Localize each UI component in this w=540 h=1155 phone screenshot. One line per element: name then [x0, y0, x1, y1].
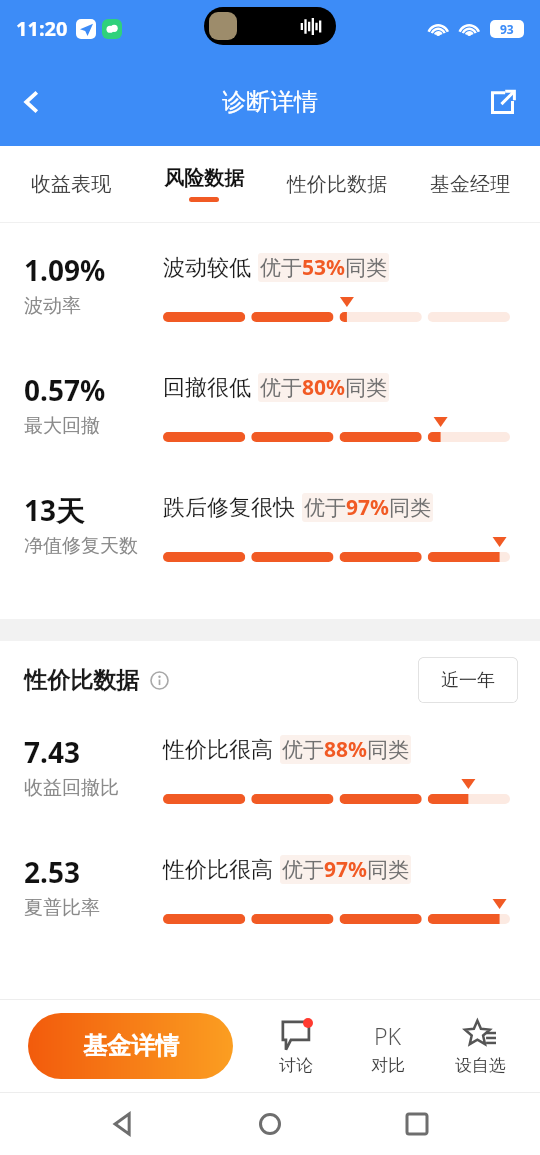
staticText: PK	[374, 1020, 402, 1051]
staticText: 0.57%	[24, 371, 106, 409]
button[interactable]: 2.53	[0, 839, 540, 959]
button[interactable]: 基金详情	[28, 1013, 233, 1079]
button[interactable]: 0.57%	[0, 357, 540, 477]
staticText: 回撤很低	[163, 374, 251, 402]
button[interactable]: PK	[350, 1013, 426, 1080]
staticText: 性价比很高	[163, 736, 273, 764]
staticText: 7.43	[24, 733, 80, 771]
staticText: 夏普比率	[24, 896, 100, 920]
staticText: 跌后修复很快	[163, 494, 295, 522]
button[interactable]: Recents	[393, 1100, 441, 1148]
staticText: 11:20	[16, 15, 68, 42]
button[interactable]: Back	[6, 76, 58, 128]
staticText: 优于97%同类	[304, 493, 431, 522]
staticText: 波动率	[24, 294, 81, 318]
staticText: 收益回撤比	[24, 776, 119, 800]
staticText: 优于53%同类	[260, 253, 387, 282]
staticText: 近一年	[441, 669, 495, 692]
button[interactable]: 13天	[0, 477, 540, 597]
button[interactable]: 设自选	[442, 1013, 518, 1080]
staticText: 讨论	[279, 1055, 313, 1076]
staticText: 诊断详情	[222, 87, 318, 117]
button[interactable]: 基金经理	[403, 146, 536, 222]
staticText: 收益表现	[31, 172, 111, 197]
staticText: 优于97%同类	[282, 855, 409, 884]
button[interactable]: 讨论	[258, 1013, 334, 1080]
staticText: 波动较低	[163, 254, 251, 282]
staticText: 性价比数据	[24, 666, 139, 695]
staticText: 13天	[24, 491, 85, 529]
staticText: 风险数据	[164, 166, 244, 191]
staticText: 优于88%同类	[282, 735, 409, 764]
staticText: 2.53	[24, 853, 80, 891]
staticText: 对比	[371, 1055, 405, 1076]
button[interactable]: 收益表现	[4, 146, 137, 222]
button[interactable]: Home	[246, 1100, 294, 1148]
button[interactable]: Share	[476, 76, 528, 128]
staticText: 性价比很高	[163, 856, 273, 884]
staticText: 93	[500, 21, 514, 37]
staticText: 性价比数据	[287, 172, 387, 197]
staticText: 基金详情	[83, 1031, 179, 1061]
button[interactable]: 近一年	[418, 657, 518, 703]
button[interactable]: 性价比数据	[270, 146, 403, 222]
staticText: 基金经理	[430, 172, 510, 197]
staticText: 优于80%同类	[260, 373, 387, 402]
staticText: 设自选	[455, 1055, 506, 1076]
button[interactable]: Info	[148, 669, 170, 691]
button[interactable]: 风险数据	[137, 146, 270, 222]
staticText: 最大回撤	[24, 414, 100, 438]
button[interactable]: 7.43	[0, 719, 540, 839]
staticText: 1.09%	[24, 251, 106, 289]
button[interactable]: 1.09%	[0, 237, 540, 357]
button[interactable]: Back	[99, 1100, 147, 1148]
staticText: 净值修复天数	[24, 534, 138, 558]
